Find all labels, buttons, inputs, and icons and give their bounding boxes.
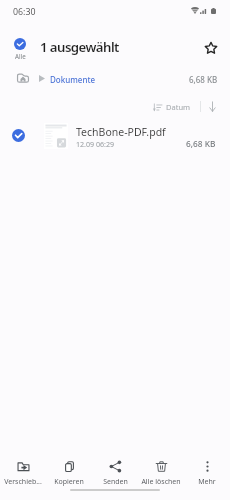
staticText: 6,68 KB: [186, 138, 216, 149]
button[interactable]: Senden: [92, 460, 138, 487]
staticText: 1 ausgewählt: [40, 38, 119, 56]
staticText: Senden: [103, 477, 128, 487]
button[interactable]: Verschieb...: [0, 460, 46, 487]
button[interactable]: [16, 71, 30, 85]
button[interactable]: Datum: [151, 100, 193, 114]
staticText: Alle löschen: [141, 477, 181, 487]
staticText: TechBone-PDF.pdf: [76, 125, 166, 139]
button[interactable]: Alle: [14, 38, 26, 60]
staticText: 06:30: [13, 6, 36, 18]
staticText: Alle: [15, 52, 26, 60]
staticText: 6,68 KB: [189, 74, 218, 85]
button[interactable]: Sortierrichtung: [205, 99, 219, 113]
staticText: Kopieren: [54, 477, 84, 487]
staticText: Mehr: [198, 477, 216, 487]
staticText: Datum: [166, 102, 191, 112]
button[interactable]: Kopieren: [46, 460, 92, 487]
staticText: Verschieb...: [4, 477, 42, 487]
button[interactable]: Favorit: [200, 37, 222, 59]
button[interactable]: Mehr: [184, 460, 230, 487]
button[interactable]: Dokumente: [50, 74, 96, 85]
button[interactable]: TechBone-PDF.pdf: [0, 119, 230, 153]
staticText: 12.09 06:29: [76, 139, 115, 149]
button[interactable]: Alle löschen: [138, 460, 184, 487]
